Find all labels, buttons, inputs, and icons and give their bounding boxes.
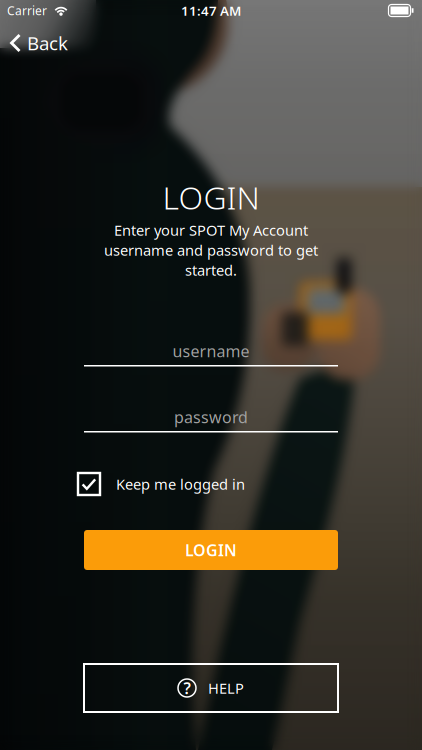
staticText: HELP bbox=[208, 678, 244, 698]
staticText: username bbox=[172, 340, 249, 362]
button[interactable]: ? bbox=[84, 664, 338, 712]
staticText: username and password to get bbox=[104, 240, 318, 260]
button[interactable]: Keep me logged in bbox=[78, 469, 332, 499]
button[interactable]: Back bbox=[8, 24, 118, 62]
staticText: password bbox=[174, 406, 248, 428]
staticText: Keep me logged in bbox=[116, 474, 245, 494]
staticText: 11:47 AM bbox=[181, 2, 241, 19]
staticText: Enter your SPOT My Account bbox=[114, 220, 308, 240]
staticText: Carrier bbox=[7, 2, 47, 18]
button[interactable]: LOGIN bbox=[84, 530, 338, 570]
staticText: LOGIN bbox=[185, 539, 237, 561]
staticText: LOGIN bbox=[162, 176, 259, 218]
staticText: started. bbox=[185, 260, 237, 280]
staticText: ? bbox=[183, 677, 190, 699]
staticText: Back bbox=[27, 31, 68, 55]
